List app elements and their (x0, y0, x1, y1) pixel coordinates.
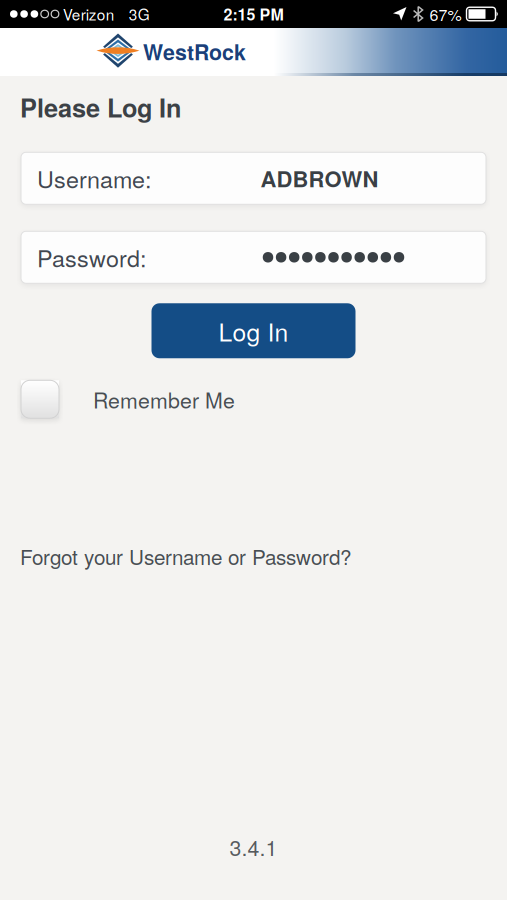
staticText: 2:15 PM (223, 2, 283, 25)
staticText: Username: (37, 162, 151, 195)
staticText: Remember Me (93, 384, 235, 414)
button[interactable]: Remember Me (21, 380, 507, 418)
staticText: WestRock (143, 36, 246, 67)
button[interactable]: Log In (151, 303, 355, 358)
staticText: Log In (218, 313, 288, 348)
staticText: Verizon (63, 3, 115, 25)
staticText: 67% (429, 2, 461, 25)
staticText: Please Log In (20, 89, 181, 125)
staticText: 3G (129, 3, 150, 25)
staticText: ADBROWN (260, 162, 378, 194)
button[interactable]: Forgot your Username or Password? (20, 541, 351, 571)
staticText: Forgot your Username or Password? (20, 541, 351, 571)
staticText: Password: (37, 241, 146, 274)
staticText: 3.4.1 (229, 831, 277, 862)
